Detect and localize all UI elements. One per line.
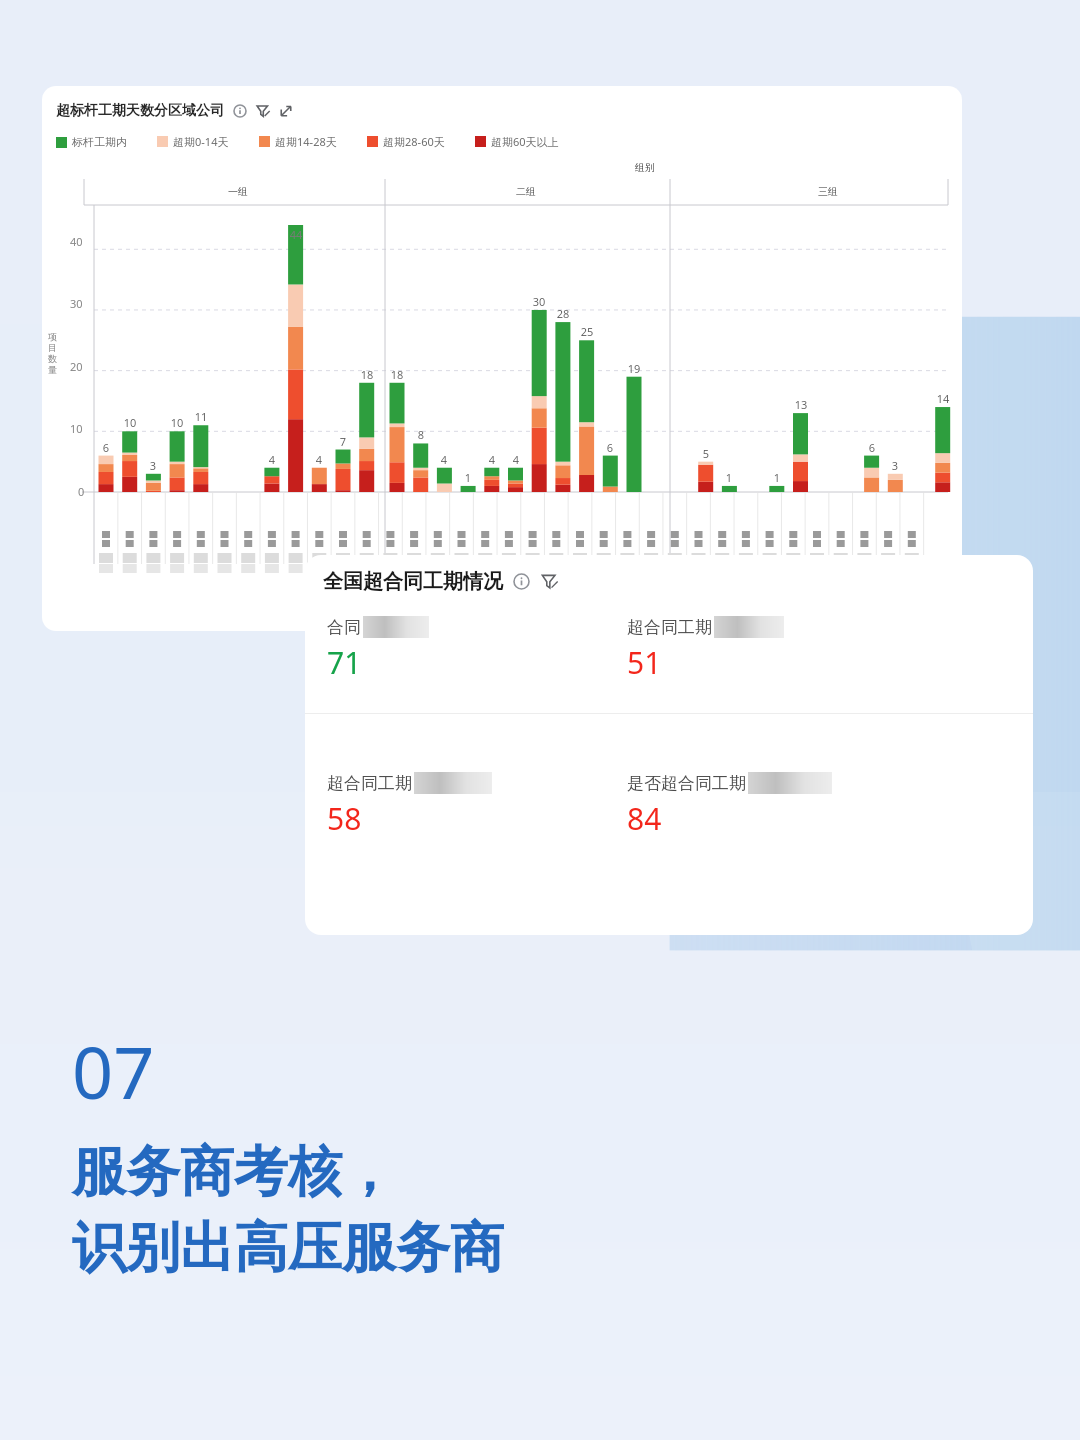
staticText: 组别	[635, 161, 655, 174]
staticText: 18	[358, 367, 376, 382]
staticText: 1	[720, 470, 738, 485]
staticText: 44	[287, 227, 305, 242]
staticText: 识别出高压服务商	[72, 1214, 504, 1282]
staticText: 6	[97, 440, 115, 455]
staticText: 6	[863, 440, 881, 455]
staticText: 一组	[228, 185, 248, 198]
button[interactable]: 筛选	[256, 104, 270, 118]
staticText: 28	[554, 306, 572, 321]
staticText: 超期60天以上	[491, 134, 559, 149]
button[interactable]: 说明	[513, 573, 530, 590]
staticText: 超期0-14天	[173, 134, 229, 149]
staticText: 84	[627, 798, 662, 839]
staticText: 11	[192, 409, 210, 424]
button[interactable]: 导出	[279, 104, 293, 118]
staticText: 超标杆工期天数分区域公司	[56, 102, 224, 120]
staticText: 标杆工期内	[72, 135, 127, 149]
button[interactable]: 超合同工期	[627, 616, 927, 683]
staticText: 4	[310, 452, 328, 467]
staticText: 14	[934, 391, 952, 406]
button[interactable]: 超标杆工期天数分区域公司	[42, 86, 962, 631]
staticText: 18	[388, 367, 406, 382]
staticText: 量	[48, 364, 57, 375]
staticText: 项	[48, 331, 57, 342]
staticText: 20	[70, 359, 83, 374]
staticText: 8	[412, 427, 430, 442]
button[interactable]: 全国超合同工期情况	[305, 555, 1033, 935]
staticText: 30	[70, 296, 83, 311]
staticText: 数	[48, 353, 57, 364]
staticText: 全国超合同工期情况	[323, 569, 503, 594]
staticText: 合同	[327, 617, 361, 638]
staticText: 1	[459, 470, 477, 485]
staticText: 三组	[818, 185, 838, 198]
staticText: 服务商考核，	[72, 1138, 396, 1206]
staticText: 58	[327, 798, 362, 839]
staticText: 超期14-28天	[275, 134, 337, 149]
staticText: 19	[625, 361, 643, 376]
staticText: 目	[48, 342, 57, 353]
staticText: 13	[792, 397, 810, 412]
staticText: 51	[627, 642, 662, 683]
staticText: 10	[168, 415, 186, 430]
staticText: 4	[483, 452, 501, 467]
staticText: 1	[768, 470, 786, 485]
staticText: 3	[886, 458, 904, 473]
staticText: 71	[327, 642, 362, 683]
staticText: 0	[78, 484, 85, 499]
button[interactable]: 超合同工期	[327, 772, 627, 839]
staticText: 25	[578, 324, 596, 339]
staticText: 4	[507, 452, 525, 467]
staticText: 二组	[516, 185, 536, 198]
staticText: 4	[263, 452, 281, 467]
staticText: 7	[334, 434, 352, 449]
button[interactable]: 筛选	[541, 573, 558, 590]
staticText: 超期28-60天	[383, 134, 445, 149]
staticText: 5	[697, 446, 715, 461]
staticText: 40	[70, 234, 83, 249]
staticText: 10	[121, 415, 139, 430]
button[interactable]: 是否超合同工期	[627, 772, 947, 839]
staticText: 30	[530, 294, 548, 309]
staticText: 6	[601, 440, 619, 455]
staticText: 10	[70, 421, 83, 436]
staticText: 3	[144, 458, 162, 473]
staticText: 是否超合同工期	[627, 773, 746, 794]
button[interactable]: 说明	[233, 104, 247, 118]
staticText: 超合同工期	[327, 773, 412, 794]
button[interactable]: 合同	[327, 616, 627, 683]
staticText: 07	[72, 1022, 155, 1120]
staticText: 4	[435, 452, 453, 467]
staticText: 超合同工期	[627, 617, 712, 638]
